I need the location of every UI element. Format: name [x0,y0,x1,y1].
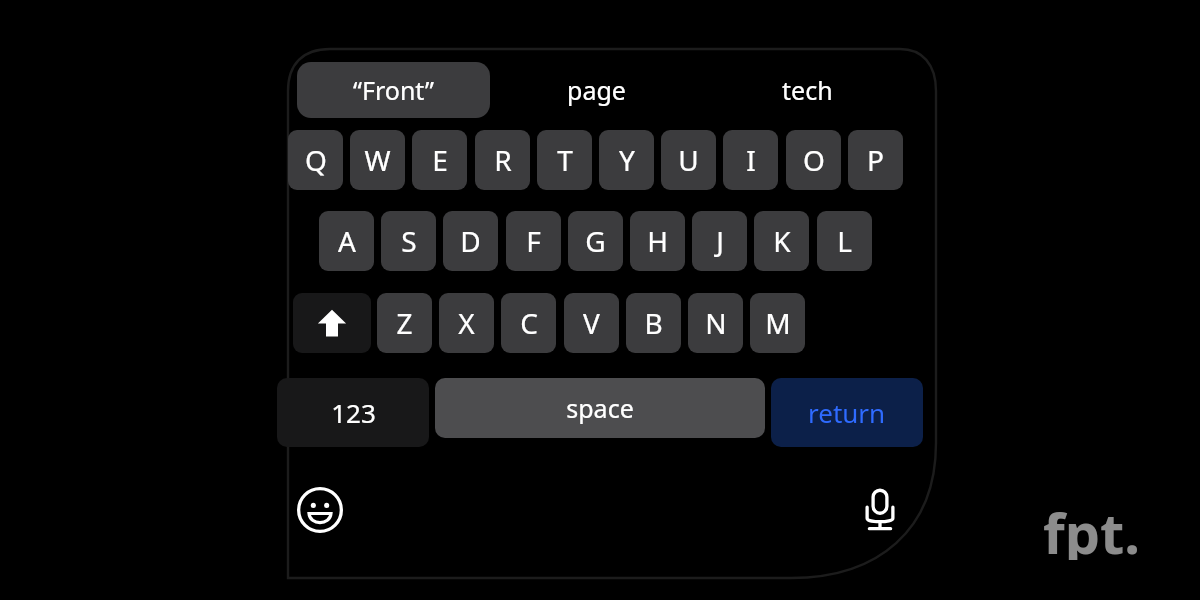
staticText: 123 [331,395,376,430]
button[interactable]: L [817,211,872,271]
button[interactable]: T [537,130,592,190]
button[interactable]: space [435,378,765,438]
button[interactable]: “Front” [297,62,490,118]
button[interactable]: O [786,130,841,190]
staticText: return [808,395,886,430]
button[interactable]: return [771,378,923,447]
staticText: J [716,222,724,260]
staticText: G [585,222,606,260]
button[interactable]: tech [716,62,898,118]
staticText: W [364,141,391,179]
button[interactable]: Shift [293,293,371,353]
staticText: M [765,304,791,342]
staticText: Z [396,304,413,342]
staticText: L [837,222,852,260]
staticText: K [773,222,791,260]
button[interactable]: E [412,130,467,190]
button[interactable]: W [350,130,405,190]
staticText: page [567,73,626,107]
button[interactable]: Q [288,130,343,190]
staticText: fpt. [1043,494,1141,560]
staticText: O [803,141,825,179]
button[interactable]: Voice input [854,484,906,536]
staticText: V [583,304,600,342]
button[interactable]: K [754,211,809,271]
button[interactable]: P [848,130,903,190]
button[interactable]: Y [599,130,654,190]
button[interactable]: N [688,293,743,353]
staticText: Y [619,141,635,179]
button[interactable]: X [439,293,494,353]
staticText: B [644,304,663,342]
button[interactable]: G [568,211,623,271]
staticText: N [705,304,727,342]
button[interactable]: 123 [277,378,429,447]
button[interactable]: Z [377,293,432,353]
staticText: I [746,141,756,179]
staticText: X [458,304,475,342]
staticText: D [460,222,481,260]
button[interactable]: F [506,211,561,271]
staticText: “Front” [353,73,434,107]
button[interactable]: R [475,130,530,190]
staticText: S [401,222,417,260]
button[interactable]: H [630,211,685,271]
staticText: U [678,141,699,179]
button[interactable]: J [692,211,747,271]
staticText: F [526,222,541,260]
button[interactable]: I [723,130,778,190]
button[interactable]: Emoji keyboard [294,484,346,536]
staticText: Q [305,141,327,179]
button[interactable]: D [443,211,498,271]
staticText: C [520,304,538,342]
button[interactable]: U [661,130,716,190]
button[interactable]: page [505,62,687,118]
button[interactable]: M [750,293,805,353]
button[interactable]: V [564,293,619,353]
staticText: space [566,391,634,425]
staticText: R [494,141,512,179]
staticText: A [338,222,356,260]
button[interactable]: A [319,211,374,271]
staticText: H [647,222,668,260]
staticText: tech [782,73,833,107]
staticText: T [557,141,573,179]
button[interactable]: B [626,293,681,353]
button[interactable]: S [381,211,436,271]
button[interactable]: C [501,293,556,353]
staticText: P [867,141,884,179]
staticText: E [432,141,448,179]
